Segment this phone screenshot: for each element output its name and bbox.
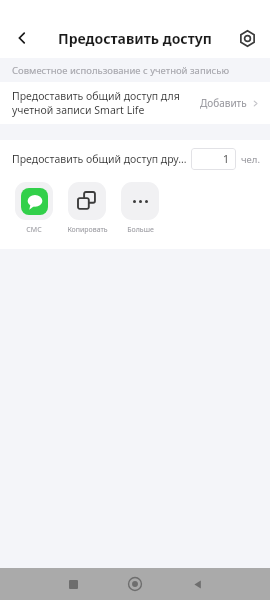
button[interactable]: Home — [115, 568, 155, 600]
button[interactable]: 1 — [191, 148, 236, 170]
staticText: Предоставить общий доступ для учетной за… — [12, 89, 200, 117]
staticText: Добавить — [200, 96, 247, 110]
staticText: СМС — [26, 225, 42, 235]
staticText: Предоставить общий доступ дру… — [12, 152, 191, 166]
button[interactable]: Recent apps — [53, 568, 93, 600]
button[interactable]: Back — [6, 22, 38, 54]
button[interactable]: Больше — [118, 182, 162, 235]
button[interactable]: Settings — [232, 23, 262, 53]
button[interactable]: СМС — [12, 182, 56, 235]
staticText: Совместное использование с учетной запис… — [12, 64, 229, 77]
staticText: чел. — [241, 153, 260, 166]
button[interactable]: Предоставить общий доступ для учетной за… — [0, 82, 270, 124]
staticText: Больше — [127, 225, 154, 235]
staticText: 1 — [223, 152, 230, 166]
button[interactable]: Back — [177, 568, 217, 600]
button[interactable]: Копировать — [65, 182, 109, 235]
staticText: Предоставить доступ — [58, 29, 212, 48]
button[interactable]: Предоставить общий доступ дру… — [0, 140, 270, 178]
staticText: Копировать — [67, 225, 108, 235]
